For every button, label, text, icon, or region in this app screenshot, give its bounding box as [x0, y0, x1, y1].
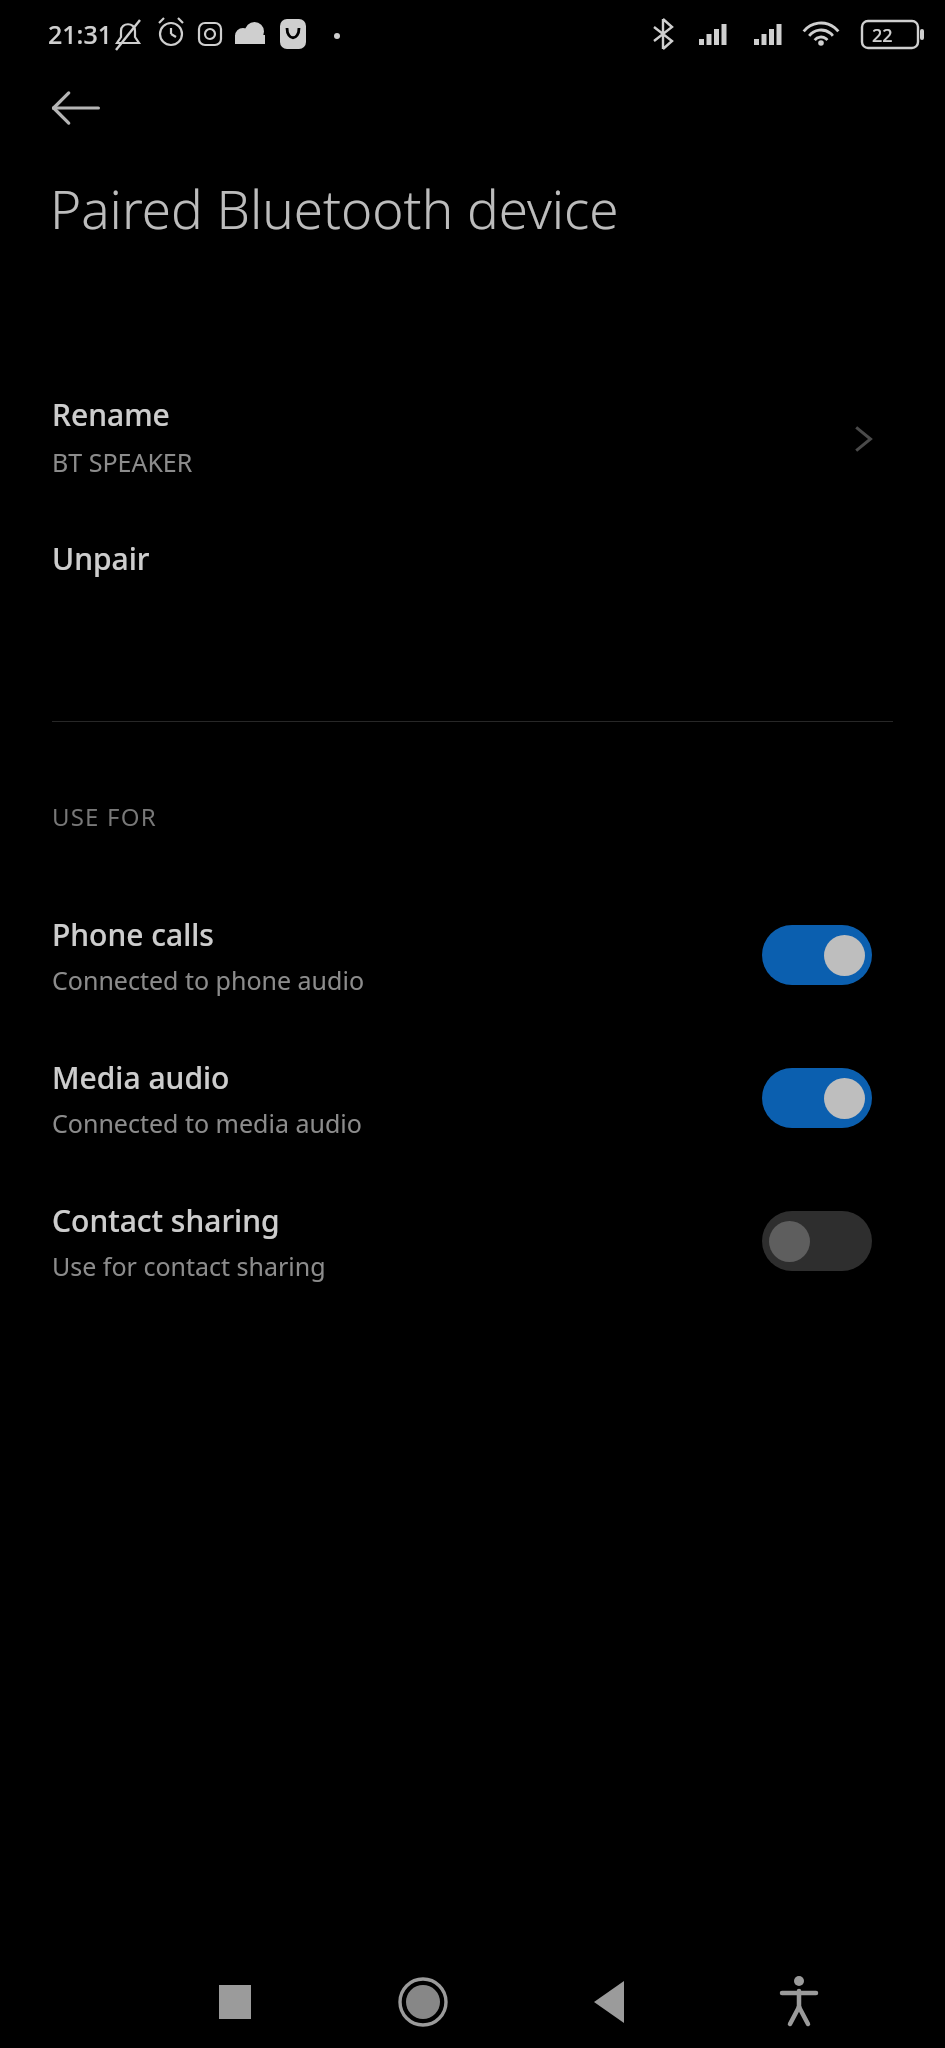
button[interactable]: Contact sharing [762, 1211, 872, 1271]
staticText: 21:31 [48, 17, 113, 51]
staticText: Contact sharing [52, 1200, 280, 1241]
staticText: Unpair [52, 538, 150, 579]
button[interactable]: Media audio [762, 1068, 872, 1128]
staticText: Paired Bluetooth device [50, 172, 619, 244]
button[interactable]: Recent apps [141, 1955, 329, 2048]
staticText: Connected to media audio [52, 1106, 362, 1140]
staticText: 22 [872, 23, 893, 48]
button[interactable]: Unpair [0, 522, 945, 612]
staticText: Media audio [52, 1057, 230, 1098]
staticText: BT SPEAKER [52, 445, 193, 479]
button[interactable]: Back [28, 60, 124, 156]
button[interactable]: Back [517, 1955, 705, 2048]
button[interactable]: Accessibility [705, 1955, 893, 2048]
staticText: Rename [52, 394, 170, 435]
button[interactable]: Rename [0, 380, 945, 500]
staticText: Connected to phone audio [52, 963, 365, 997]
staticText: USE FOR [52, 800, 157, 833]
button[interactable]: Media audio [0, 1038, 945, 1158]
staticText: Use for contact sharing [52, 1249, 326, 1283]
staticText: Phone calls [52, 914, 214, 955]
button[interactable]: Phone calls [762, 925, 872, 985]
button[interactable]: Phone calls [0, 895, 945, 1015]
button[interactable]: Home [329, 1955, 517, 2048]
button[interactable]: Contact sharing [0, 1181, 945, 1301]
